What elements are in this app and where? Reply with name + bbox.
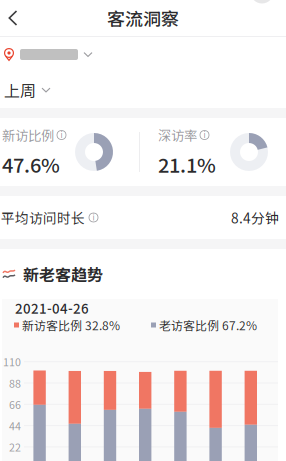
staticText: 新访比例 <box>2 125 54 145</box>
staticText: 2021-04-26 <box>15 298 89 318</box>
staticText: 110 <box>3 354 21 369</box>
staticText: 新访客比例 32.8% <box>19 316 120 334</box>
staticText: 44 <box>9 418 21 433</box>
staticText: 21.1% <box>158 150 216 179</box>
staticText: 深访率 <box>158 125 197 145</box>
button[interactable]: 上周 <box>0 72 286 108</box>
staticText: 8.4分钟 <box>231 208 279 227</box>
staticText: i <box>60 129 62 140</box>
staticText: 88 <box>9 375 21 391</box>
staticText: 47.6% <box>2 150 60 179</box>
staticText: 66 <box>9 397 21 412</box>
staticText: 新老客趋势 <box>23 262 103 286</box>
staticText: 老访客比例 67.2% <box>156 316 257 334</box>
staticText: 22 <box>9 439 21 455</box>
staticText: i <box>92 211 94 223</box>
staticText: i <box>203 129 205 140</box>
staticText: 客流洞察 <box>107 5 179 31</box>
button[interactable] <box>0 37 286 72</box>
button[interactable]: Back <box>0 0 26 36</box>
staticText: 平均访问时长 <box>1 208 85 227</box>
staticText: 上周 <box>4 78 36 102</box>
